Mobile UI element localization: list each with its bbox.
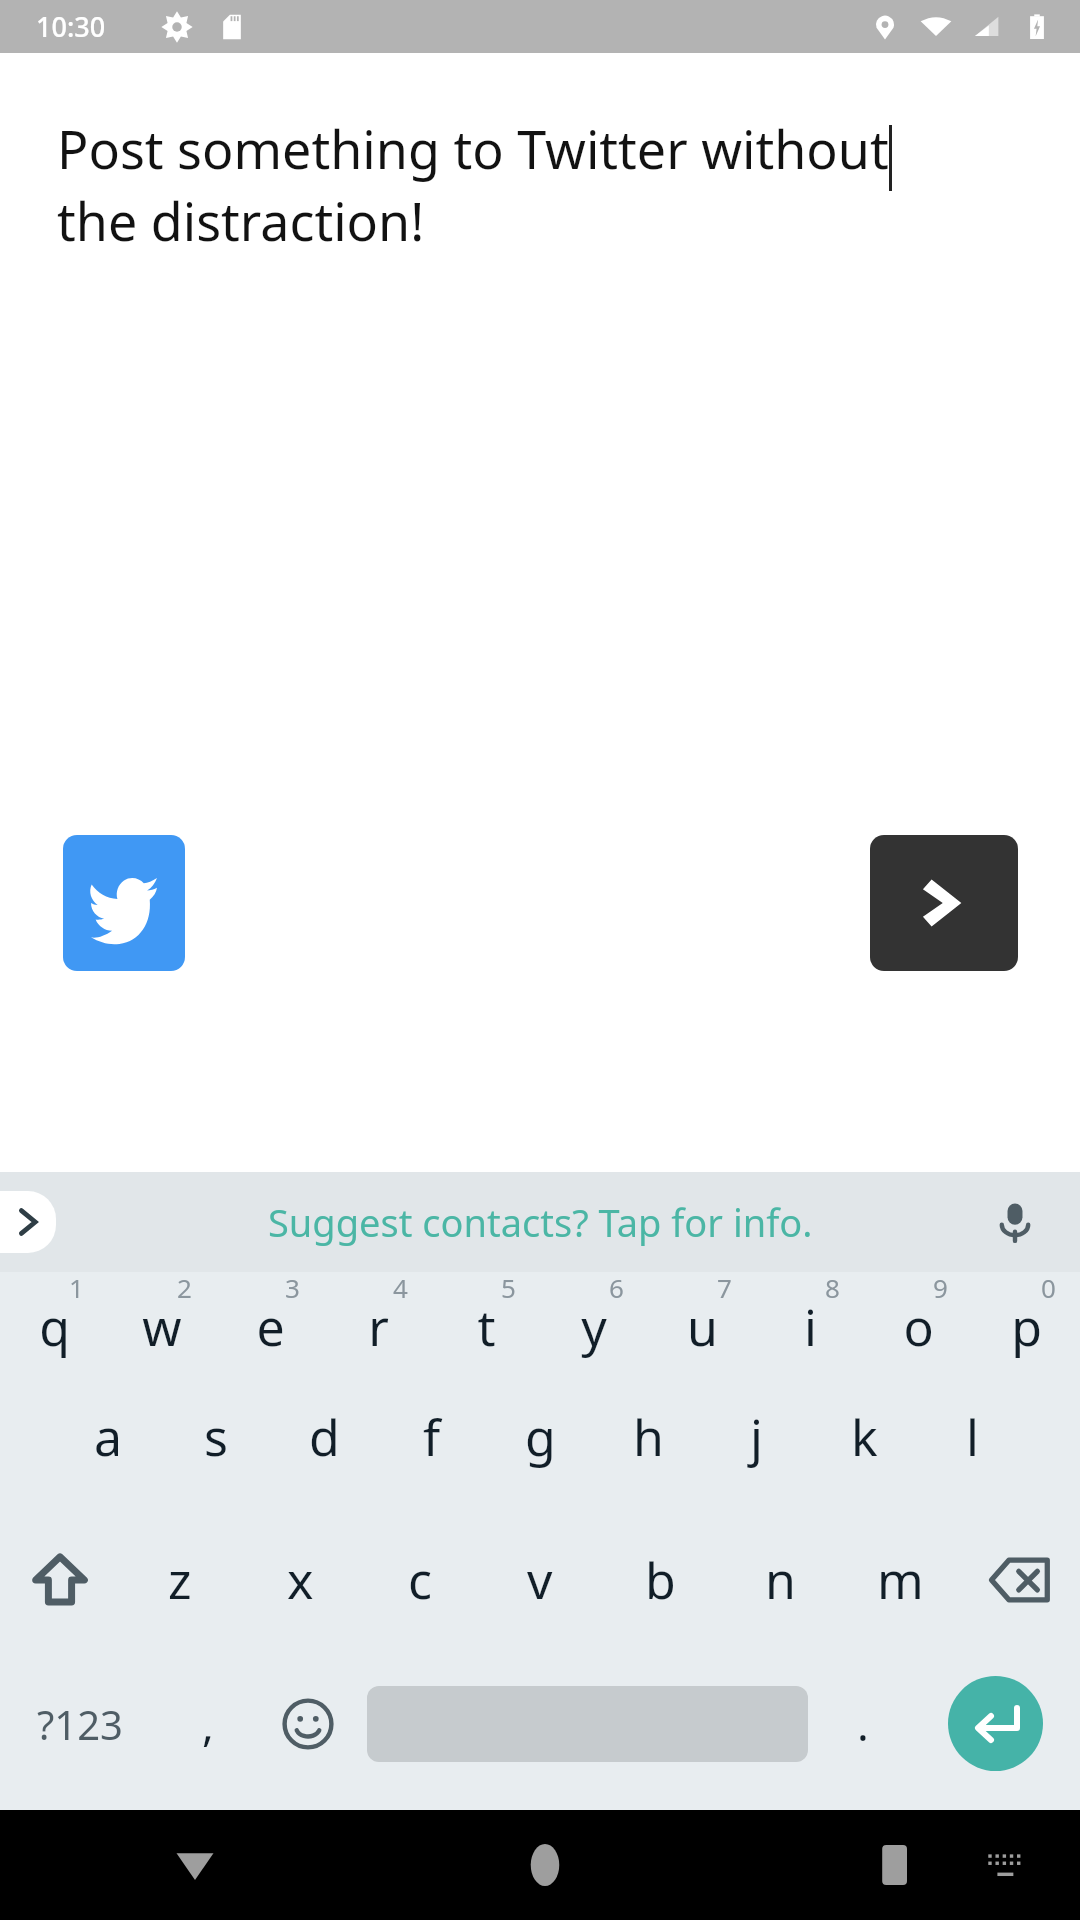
staticText: h bbox=[633, 1403, 664, 1471]
button[interactable]: g bbox=[486, 1365, 594, 1508]
button[interactable]: x bbox=[240, 1508, 360, 1651]
staticText: 1 bbox=[69, 1270, 84, 1305]
button[interactable]: h bbox=[594, 1365, 702, 1508]
staticText: p bbox=[1011, 1293, 1042, 1361]
staticText: 3 bbox=[285, 1270, 300, 1305]
staticText: 7 bbox=[717, 1270, 732, 1305]
staticText: Post something to Twitter without the di… bbox=[57, 113, 889, 256]
button[interactable]: Voice input bbox=[980, 1187, 1050, 1257]
staticText: 5 bbox=[501, 1270, 516, 1305]
staticText: c bbox=[408, 1546, 432, 1614]
staticText: w bbox=[142, 1293, 182, 1361]
button[interactable]: 5 bbox=[432, 1272, 540, 1365]
staticText: k bbox=[851, 1403, 878, 1471]
staticText: i bbox=[804, 1293, 817, 1361]
staticText: t bbox=[477, 1293, 496, 1361]
button[interactable]: 3 bbox=[216, 1272, 324, 1365]
staticText: n bbox=[765, 1546, 796, 1614]
button[interactable]: Emoji bbox=[255, 1651, 360, 1796]
staticText: r bbox=[368, 1293, 389, 1361]
button[interactable]: 7 bbox=[648, 1272, 756, 1365]
staticText: l bbox=[966, 1403, 979, 1471]
button[interactable]: Backspace bbox=[960, 1508, 1080, 1651]
button[interactable]: a bbox=[54, 1365, 162, 1508]
button[interactable]: Shift bbox=[0, 1508, 120, 1651]
staticText: d bbox=[309, 1403, 340, 1471]
staticText: 0 bbox=[1041, 1270, 1056, 1305]
button[interactable]: 1 bbox=[0, 1272, 108, 1365]
button[interactable]: n bbox=[720, 1508, 840, 1651]
button[interactable]: Enter bbox=[948, 1676, 1043, 1771]
button[interactable]: s bbox=[162, 1365, 270, 1508]
button[interactable]: 4 bbox=[324, 1272, 432, 1365]
staticText: q bbox=[39, 1293, 70, 1361]
staticText: 9 bbox=[933, 1270, 948, 1305]
staticText: m bbox=[877, 1546, 924, 1614]
button[interactable]: Back bbox=[140, 1810, 250, 1920]
staticText: v bbox=[527, 1546, 553, 1614]
button[interactable]: d bbox=[270, 1365, 378, 1508]
staticText: 6 bbox=[609, 1270, 624, 1305]
button[interactable]: Recents bbox=[840, 1810, 950, 1920]
staticText: x bbox=[287, 1546, 314, 1614]
button[interactable]: Suggest contacts? Tap for info. bbox=[268, 1196, 813, 1248]
staticText: f bbox=[423, 1403, 441, 1471]
staticText: u bbox=[687, 1293, 718, 1361]
staticText: j bbox=[750, 1403, 763, 1471]
button[interactable]: 9 bbox=[864, 1272, 972, 1365]
button[interactable]: 0 bbox=[972, 1272, 1080, 1365]
button[interactable]: b bbox=[600, 1508, 720, 1651]
staticText: . bbox=[857, 1694, 869, 1754]
staticText: z bbox=[168, 1546, 192, 1614]
staticText: b bbox=[645, 1546, 676, 1614]
button[interactable]: m bbox=[840, 1508, 960, 1651]
button[interactable]: 8 bbox=[756, 1272, 864, 1365]
button[interactable]: ?123 bbox=[0, 1651, 160, 1796]
staticText: s bbox=[204, 1403, 228, 1471]
button[interactable]: j bbox=[702, 1365, 810, 1508]
button[interactable]: c bbox=[360, 1508, 480, 1651]
staticText: g bbox=[525, 1403, 556, 1471]
button[interactable]: z bbox=[120, 1508, 240, 1651]
button[interactable]: l bbox=[918, 1365, 1026, 1508]
staticText: o bbox=[903, 1293, 934, 1361]
button[interactable]: . bbox=[815, 1651, 910, 1796]
staticText: Suggest contacts? Tap for info. bbox=[268, 1196, 813, 1248]
button[interactable]: 6 bbox=[540, 1272, 648, 1365]
staticText: ?123 bbox=[37, 1697, 123, 1751]
staticText: 10:30 bbox=[36, 8, 106, 45]
staticText: 8 bbox=[825, 1270, 840, 1305]
button[interactable]: Send bbox=[870, 835, 1018, 971]
button[interactable]: Twitter bbox=[63, 835, 185, 971]
staticText: 4 bbox=[393, 1270, 408, 1305]
staticText: 2 bbox=[177, 1270, 192, 1305]
button[interactable]: Switch keyboard bbox=[950, 1810, 1060, 1920]
staticText: y bbox=[581, 1293, 607, 1361]
button[interactable]: Home bbox=[490, 1810, 600, 1920]
staticText: , bbox=[202, 1694, 214, 1754]
button[interactable]: f bbox=[378, 1365, 486, 1508]
button[interactable]: 2 bbox=[108, 1272, 216, 1365]
button[interactable]: k bbox=[810, 1365, 918, 1508]
button[interactable]: v bbox=[480, 1508, 600, 1651]
staticText: e bbox=[256, 1293, 285, 1361]
button[interactable]: Expand suggestions bbox=[0, 1191, 56, 1253]
staticText: a bbox=[94, 1403, 123, 1471]
button[interactable]: , bbox=[160, 1651, 255, 1796]
